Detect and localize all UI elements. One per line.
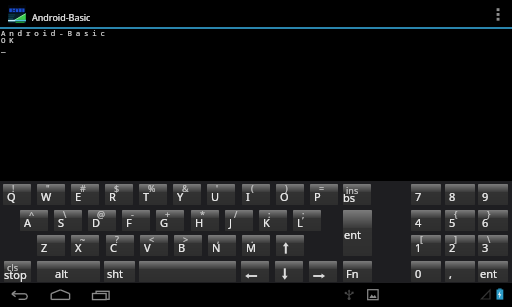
staticText: Android-Basic (1, 28, 109, 38)
button[interactable]: sht (104, 261, 135, 282)
staticText: W (41, 189, 52, 204)
staticText: & (182, 184, 189, 194)
staticText: B (178, 240, 186, 255)
button[interactable]: A (20, 210, 48, 231)
staticText: O (280, 189, 289, 204)
button[interactable]: More options (486, 3, 510, 25)
button[interactable]: P (310, 184, 338, 205)
button[interactable]: 5 (445, 210, 475, 231)
button[interactable]: 2 (445, 235, 475, 256)
button[interactable]: K (259, 210, 287, 231)
button[interactable]: Down (275, 261, 303, 282)
staticText: Y (177, 189, 184, 204)
staticText: + (165, 210, 171, 220)
button[interactable]: B (174, 235, 202, 256)
button[interactable]: 1 (411, 235, 441, 256)
button[interactable]: Recent apps (88, 286, 114, 304)
staticText: $ (114, 184, 120, 194)
button[interactable]: Android-Basic (4, 2, 104, 26)
staticText: 7 (415, 189, 422, 204)
staticText: # (80, 184, 86, 194)
staticText: ^ (29, 210, 35, 220)
staticText: C (110, 240, 117, 255)
button[interactable]: Back (6, 286, 34, 304)
button[interactable]: V (140, 235, 168, 256)
staticText: ent (344, 227, 361, 242)
button[interactable]: 7 (411, 184, 441, 205)
staticText: . (251, 235, 254, 245)
button[interactable]: Right (309, 261, 337, 282)
staticText: 4 (415, 215, 422, 230)
staticText: % (148, 184, 156, 194)
staticText: ( (251, 184, 254, 194)
button[interactable]: Home (47, 286, 74, 304)
button[interactable]: 3 (478, 235, 508, 256)
button[interactable]: stop (4, 261, 31, 282)
staticText: N (212, 240, 221, 255)
button[interactable]: Space (139, 261, 236, 282)
staticText: S (58, 215, 65, 230)
button[interactable]: D (88, 210, 116, 231)
staticText: F (126, 215, 132, 230)
button[interactable]: 6 (478, 210, 508, 231)
button[interactable]: G (156, 210, 184, 231)
staticText: @ (97, 210, 106, 220)
button[interactable]: alt (37, 261, 100, 282)
staticText: / (234, 210, 238, 220)
staticText: ins (346, 184, 359, 196)
button[interactable]: , (445, 261, 475, 282)
button[interactable]: S (54, 210, 82, 231)
staticText: OK (1, 35, 18, 45)
staticText: I (246, 189, 250, 204)
staticText: : (268, 210, 271, 220)
staticText: ? (115, 235, 119, 245)
staticText: = (319, 184, 325, 194)
button[interactable]: Q (3, 184, 31, 205)
button[interactable]: bs (343, 184, 371, 205)
button[interactable]: Fn (343, 261, 372, 282)
button[interactable]: X (71, 235, 99, 256)
button[interactable]: O (276, 184, 304, 205)
button[interactable]: L (293, 210, 321, 231)
button[interactable]: 8 (445, 184, 475, 205)
staticText: 3 (482, 240, 489, 255)
staticText: 1 (415, 240, 422, 255)
button[interactable]: 9 (478, 184, 508, 205)
staticText: 8 (449, 189, 456, 204)
button[interactable]: 4 (411, 210, 441, 231)
button[interactable]: ent (343, 210, 372, 256)
staticText: R (109, 189, 116, 204)
button[interactable]: C (106, 235, 134, 256)
staticText: \ (487, 235, 491, 245)
button[interactable]: U (207, 184, 235, 205)
staticText: , (449, 266, 452, 281)
staticText: K (263, 215, 270, 230)
button[interactable]: Left (241, 261, 269, 282)
button[interactable]: Y (173, 184, 201, 205)
button[interactable]: Z (37, 235, 65, 256)
staticText: X (75, 240, 82, 255)
staticText: D (92, 215, 101, 230)
button[interactable]: N (208, 235, 236, 256)
other: USB connected (343, 288, 356, 301)
staticText: bs (343, 190, 356, 205)
button[interactable]: H (191, 210, 219, 231)
button[interactable]: ent (478, 261, 508, 282)
button[interactable]: R (105, 184, 133, 205)
staticText: L (297, 215, 303, 230)
button[interactable]: E (71, 184, 99, 205)
button[interactable]: T (139, 184, 167, 205)
button[interactable]: W (37, 184, 65, 205)
button[interactable]: Up (276, 235, 304, 256)
button[interactable]: M (242, 235, 270, 256)
staticText: H (195, 215, 204, 230)
staticText: ] (454, 235, 457, 245)
button[interactable]: 0 (411, 261, 441, 282)
staticText: P (314, 189, 321, 204)
staticText: 9 (482, 189, 489, 204)
staticText: _ (1, 44, 10, 54)
button[interactable]: F (122, 210, 150, 231)
button[interactable]: J (225, 210, 253, 231)
staticText: 0 (415, 266, 422, 281)
button[interactable]: I (242, 184, 270, 205)
